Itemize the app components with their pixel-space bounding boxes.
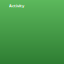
staticText: Activity <box>9 3 24 8</box>
